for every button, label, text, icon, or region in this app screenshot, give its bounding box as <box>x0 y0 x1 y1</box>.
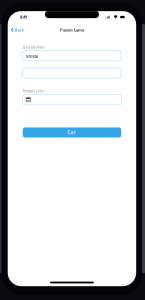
staticText: Cari <box>67 129 76 135</box>
button[interactable]: Cari <box>23 127 121 138</box>
staticText: Back <box>15 27 24 33</box>
staticText: 8:49 <box>20 14 27 20</box>
staticText: Jenis Identitas <box>23 45 44 49</box>
staticText: Tanggal Lahir <box>23 89 44 93</box>
staticText: NIK/KIA <box>26 54 38 59</box>
staticText: Pasien Lama <box>60 27 84 33</box>
button[interactable]: Back <box>8 24 27 36</box>
